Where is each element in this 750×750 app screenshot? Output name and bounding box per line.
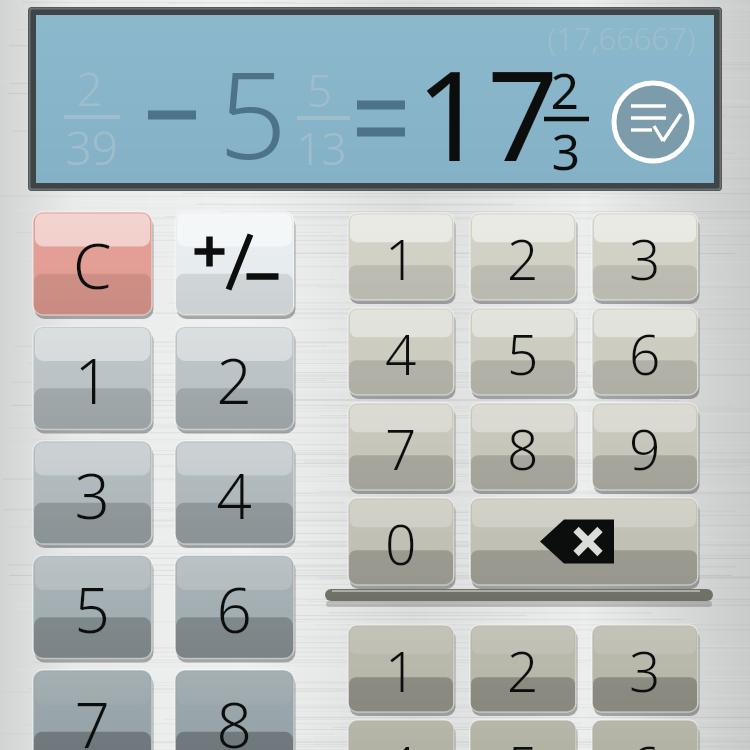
button[interactable]: Fraction key 2 — [470, 625, 576, 712]
button[interactable]: Show calculation steps — [614, 83, 692, 161]
button[interactable]: Clear — [33, 212, 152, 315]
button[interactable]: Plus minus sign — [175, 212, 294, 315]
button[interactable]: Fraction key 6 — [592, 720, 698, 750]
button[interactable]: Digit 2 — [470, 213, 576, 300]
button[interactable]: Digit 8 — [470, 403, 576, 490]
button[interactable]: Key 1 — [33, 327, 152, 430]
button[interactable]: Digit 1 — [348, 213, 454, 300]
button[interactable]: Key 6 — [175, 556, 294, 659]
button[interactable]: Key 5 — [33, 556, 152, 659]
button[interactable]: Digit 9 — [592, 403, 698, 490]
button[interactable]: Key 2 — [175, 327, 294, 430]
button[interactable]: Digit 5 — [470, 308, 576, 395]
button[interactable]: Fraction key 1 — [348, 625, 454, 712]
button[interactable]: Key 8 — [175, 670, 294, 750]
button[interactable]: Digit 4 — [348, 308, 454, 395]
button[interactable]: Digit 0 — [348, 498, 454, 585]
button[interactable]: Fraction key 4 — [348, 720, 454, 750]
button[interactable]: Expression display — [28, 7, 722, 191]
button[interactable]: Fraction key 3 — [592, 625, 698, 712]
button[interactable]: Digit 3 — [592, 213, 698, 300]
button[interactable]: Digit 7 — [348, 403, 454, 490]
button[interactable]: Digit 6 — [592, 308, 698, 395]
button[interactable]: Backspace — [470, 498, 698, 585]
button[interactable]: Key 7 — [33, 670, 152, 750]
button[interactable]: Key 3 — [33, 441, 152, 544]
button[interactable]: Key 4 — [175, 441, 294, 544]
button[interactable]: Fraction key 5 — [470, 720, 576, 750]
